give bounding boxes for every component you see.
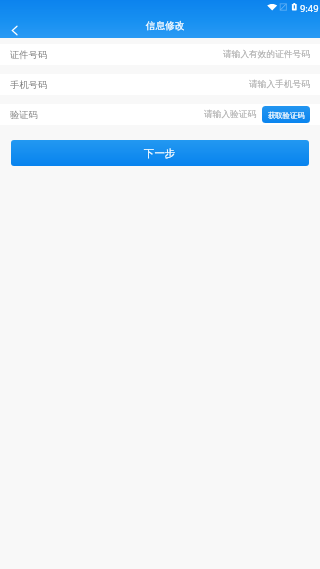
staticText: 下一步 [144, 147, 176, 160]
other: Status icons [0, 0, 320, 16]
staticText: 验证码 [10, 109, 38, 121]
staticText: 获取验证码 [268, 111, 305, 120]
staticText: 9:49 [300, 2, 319, 15]
staticText: 请输入验证码 [204, 109, 257, 120]
staticText: 请输入有效的证件号码 [223, 49, 310, 60]
staticText: 请输入手机号码 [249, 79, 310, 90]
button[interactable]: Back [0, 16, 29, 38]
button[interactable]: 获取验证码 [262, 106, 310, 123]
button[interactable]: 下一步 [11, 140, 309, 166]
staticText: 信息修改 [146, 20, 185, 32]
button[interactable]: 验证码 [0, 104, 320, 125]
staticText: 证件号码 [10, 49, 48, 61]
button[interactable]: 手机号码 [0, 74, 320, 95]
staticText: 手机号码 [10, 79, 48, 91]
button[interactable]: 证件号码 [0, 44, 320, 65]
